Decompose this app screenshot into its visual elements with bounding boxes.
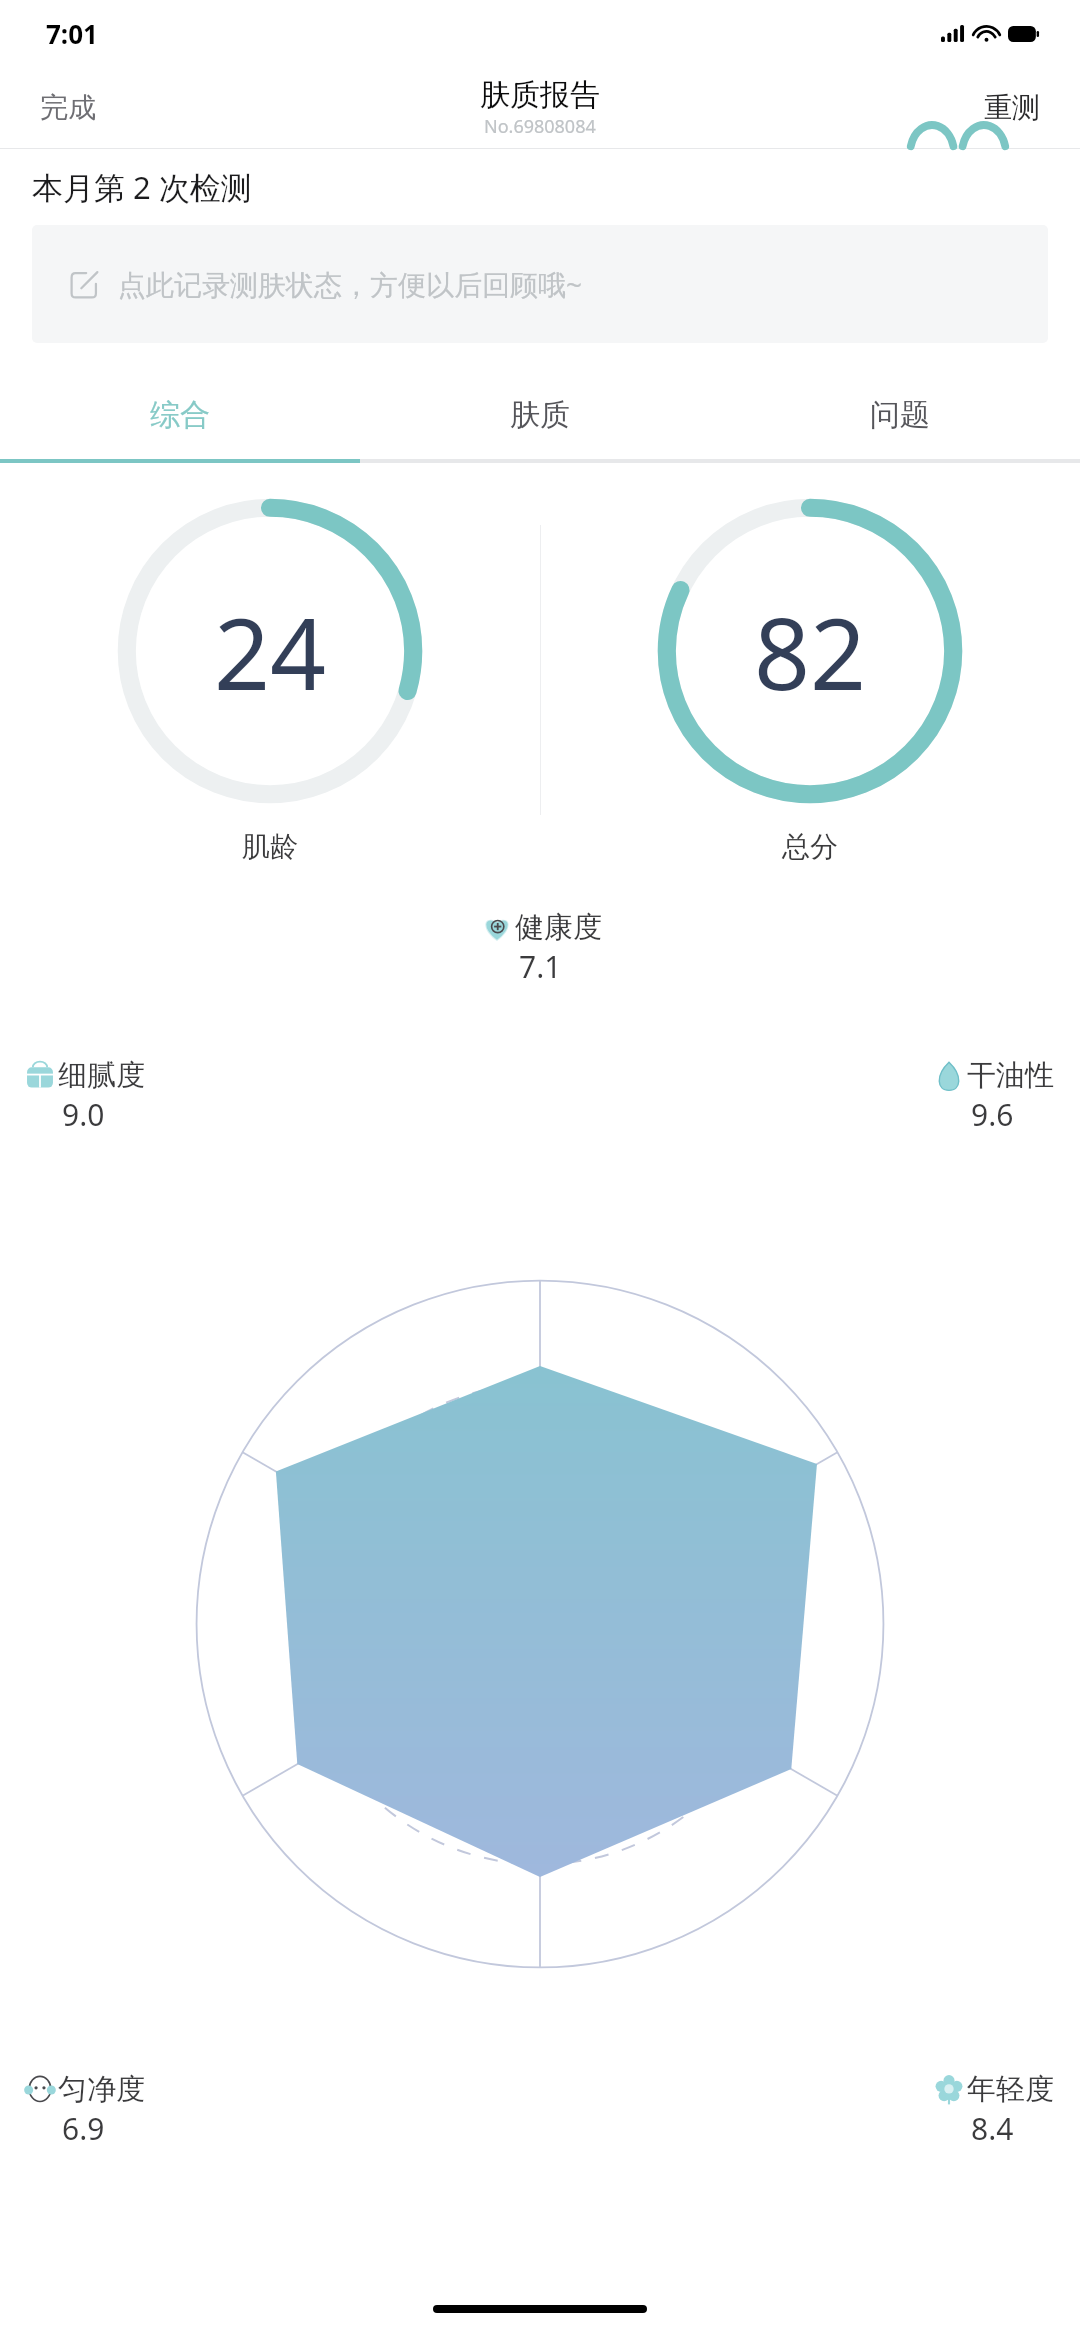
staticText: 综合: [150, 396, 210, 434]
button[interactable]: 综合: [0, 371, 360, 459]
staticText: 肤质: [510, 396, 570, 434]
button[interactable]: 完成: [0, 66, 136, 148]
staticText: 9.6: [971, 1094, 1014, 1135]
other: 健康度: [479, 910, 515, 946]
staticText: 7.1: [519, 946, 562, 987]
staticText: 健康度: [515, 909, 602, 946]
staticText: 细腻度: [58, 1057, 145, 1094]
staticText: 点此记录测肤状态，方便以后回顾哦~: [118, 265, 583, 303]
other: 年轻度: [931, 2072, 967, 2108]
other: 匀净度: [22, 2072, 58, 2108]
button[interactable]: 点此记录测肤状态，方便以后回顾哦~: [32, 225, 1048, 343]
staticText: 7:01: [46, 16, 98, 51]
staticText: 问题: [870, 396, 930, 434]
staticText: 9.0: [62, 1094, 105, 1135]
other: 细腻度: [22, 1058, 58, 1094]
staticText: 6.9: [62, 2108, 105, 2149]
staticText: 肌龄: [242, 829, 298, 864]
staticText: 匀净度: [58, 2071, 145, 2108]
staticText: 年轻度: [967, 2071, 1054, 2108]
staticText: 总分: [782, 829, 838, 864]
staticText: 重测: [984, 90, 1040, 125]
staticText: 肤质报告: [480, 76, 600, 114]
button[interactable]: 肤质: [360, 371, 720, 459]
other: 干油性: [931, 1058, 967, 1094]
button[interactable]: 重测: [944, 66, 1080, 148]
staticText: 完成: [40, 90, 96, 125]
staticText: No.69808084: [484, 114, 596, 139]
staticText: 8.4: [971, 2108, 1014, 2149]
staticText: 82: [754, 585, 867, 718]
staticText: 24: [214, 585, 327, 718]
staticText: 干油性: [967, 1057, 1054, 1094]
button[interactable]: 问题: [720, 371, 1080, 459]
staticText: 本月第 2 次检测: [32, 166, 252, 208]
